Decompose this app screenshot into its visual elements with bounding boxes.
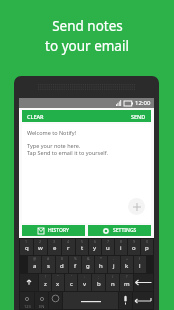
button[interactable]: SEND — [86, 110, 151, 122]
staticText: 1 — [25, 239, 28, 244]
staticText: c — [70, 280, 73, 288]
button[interactable]: Voice input — [119, 292, 132, 309]
staticText: u — [106, 244, 110, 252]
button[interactable]: 123 — [20, 292, 34, 309]
staticText: ? — [126, 274, 128, 279]
staticText: n — [111, 280, 115, 288]
button[interactable]: & — [82, 256, 94, 273]
button[interactable]: EN — [35, 292, 48, 309]
button[interactable]: $ — [56, 256, 68, 273]
staticText: j — [113, 262, 115, 270]
staticText: : — [84, 274, 85, 279]
staticText: z — [44, 280, 47, 288]
staticText: Tap Send to email it to yourself. — [27, 149, 108, 156]
staticText: h — [99, 262, 103, 270]
staticText: b — [97, 280, 101, 288]
button[interactable]: 8 — [115, 239, 127, 255]
staticText: EN — [39, 304, 45, 309]
staticText: & — [87, 256, 90, 261]
staticText: 9 — [133, 239, 136, 244]
staticText: 4 — [67, 239, 70, 244]
staticText: t — [81, 244, 84, 252]
staticText: s — [47, 262, 50, 270]
staticText: k — [125, 262, 129, 270]
staticText: + — [126, 256, 129, 261]
staticText: g — [86, 262, 90, 270]
staticText: v — [83, 280, 87, 288]
button[interactable]: Enter — [133, 292, 153, 309]
button[interactable]: # — [42, 256, 55, 273]
button[interactable]: + — [121, 256, 133, 273]
staticText: e — [53, 244, 57, 252]
button[interactable]: 2 — [34, 239, 47, 255]
staticText: 2 — [39, 239, 42, 244]
button[interactable]: 3 — [48, 239, 61, 255]
staticText: ; — [98, 274, 99, 279]
staticText: ! — [45, 274, 46, 279]
button[interactable]: * — [95, 256, 107, 273]
staticText: - — [113, 256, 115, 261]
button[interactable]: @ — [28, 256, 41, 273]
staticText: # — [47, 256, 50, 261]
button[interactable]: 6 — [89, 239, 101, 255]
staticText: q — [25, 244, 29, 252]
button[interactable]: ; — [92, 274, 105, 291]
staticText: 7 — [107, 239, 110, 244]
staticText: HISTORY — [48, 227, 69, 234]
staticText: Welcome to Notify! — [27, 129, 77, 136]
staticText: f — [74, 262, 77, 270]
button[interactable]: Emoji — [49, 292, 62, 309]
staticText: 3 — [53, 239, 56, 244]
staticText: @ — [33, 256, 37, 261]
button[interactable]: SETTINGS — [88, 225, 151, 236]
staticText: " — [57, 274, 59, 279]
button[interactable]: ? — [120, 274, 133, 291]
staticText: a — [33, 262, 37, 270]
button[interactable]: ( — [134, 256, 146, 273]
staticText: p — [145, 244, 149, 252]
staticText: to your email — [45, 37, 129, 55]
button[interactable]: Backspace — [134, 274, 153, 291]
staticText: l — [139, 262, 141, 270]
button[interactable]: 1 — [20, 239, 33, 255]
staticText: o — [132, 244, 136, 252]
staticText: 6 — [94, 239, 97, 244]
button[interactable]: 9 — [128, 239, 140, 255]
staticText: w — [38, 244, 43, 252]
button[interactable]: Space — [63, 292, 118, 309]
staticText: 123 — [24, 304, 31, 309]
staticText: $ — [61, 256, 64, 261]
button[interactable]: HISTORY — [22, 225, 85, 236]
button[interactable]: ! — [39, 274, 51, 291]
staticText: m — [124, 280, 130, 288]
staticText: 0 — [146, 239, 149, 244]
staticText: % — [74, 256, 77, 261]
button[interactable]: 5 — [76, 239, 88, 255]
staticText: CLEAR — [27, 113, 44, 120]
button[interactable]: CLEAR — [22, 110, 86, 122]
staticText: x — [56, 280, 60, 288]
staticText: r — [67, 244, 70, 252]
button[interactable]: 0 — [141, 239, 153, 255]
button[interactable]: Shift — [20, 274, 38, 291]
staticText: d — [60, 262, 64, 270]
staticText: 12:00 — [135, 99, 151, 107]
button[interactable]: New note — [128, 198, 145, 215]
staticText: 8 — [120, 239, 123, 244]
staticText: * — [100, 256, 102, 261]
button[interactable]: / — [106, 274, 119, 291]
staticText: Send notes — [52, 17, 123, 35]
button[interactable]: 4 — [62, 239, 75, 255]
staticText: 5 — [81, 239, 84, 244]
staticText: SEND — [131, 113, 146, 120]
staticText: / — [112, 274, 114, 279]
button[interactable]: ' — [65, 274, 77, 291]
staticText: i — [120, 244, 122, 252]
staticText: y — [93, 244, 97, 252]
staticText: ( — [139, 256, 141, 261]
button[interactable]: 7 — [102, 239, 114, 255]
button[interactable]: % — [69, 256, 81, 273]
button[interactable]: - — [108, 256, 120, 273]
button[interactable]: : — [78, 274, 91, 291]
button[interactable]: " — [52, 274, 64, 291]
